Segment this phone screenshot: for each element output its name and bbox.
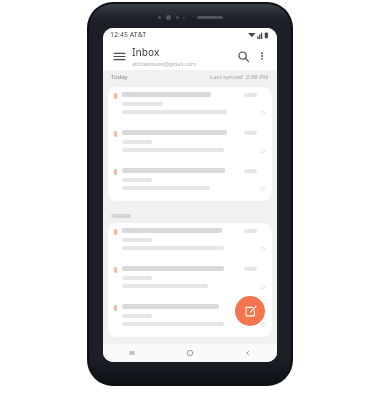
button[interactable]: Star	[108, 261, 272, 299]
button[interactable]: Compose	[235, 296, 265, 326]
button[interactable]: Star	[260, 186, 266, 192]
button[interactable]: Star	[108, 125, 272, 163]
staticText: 12:45 AT&T	[110, 30, 147, 40]
staticText: atlhowtouse@gmail.com	[132, 60, 196, 67]
button[interactable]: Star	[108, 299, 272, 337]
button[interactable]: Star	[260, 246, 266, 252]
button[interactable]: Recents	[103, 344, 161, 362]
button[interactable]: Star	[108, 163, 272, 201]
button[interactable]: More options	[253, 47, 271, 65]
button[interactable]: Back	[219, 344, 277, 362]
button[interactable]: Search	[233, 46, 253, 66]
button[interactable]: Star	[260, 322, 266, 328]
button[interactable]: Star	[108, 223, 272, 261]
button[interactable]: Menu	[109, 46, 129, 66]
staticText: Last synced 2:38 PM	[210, 73, 269, 81]
button[interactable]: Star	[260, 110, 266, 116]
button[interactable]: Star	[260, 284, 266, 290]
button[interactable]: Star	[260, 148, 266, 154]
staticText: Inbox	[132, 45, 160, 59]
button[interactable]: Home	[161, 344, 219, 362]
button[interactable]: Star	[108, 87, 272, 125]
staticText: Today	[111, 73, 128, 81]
